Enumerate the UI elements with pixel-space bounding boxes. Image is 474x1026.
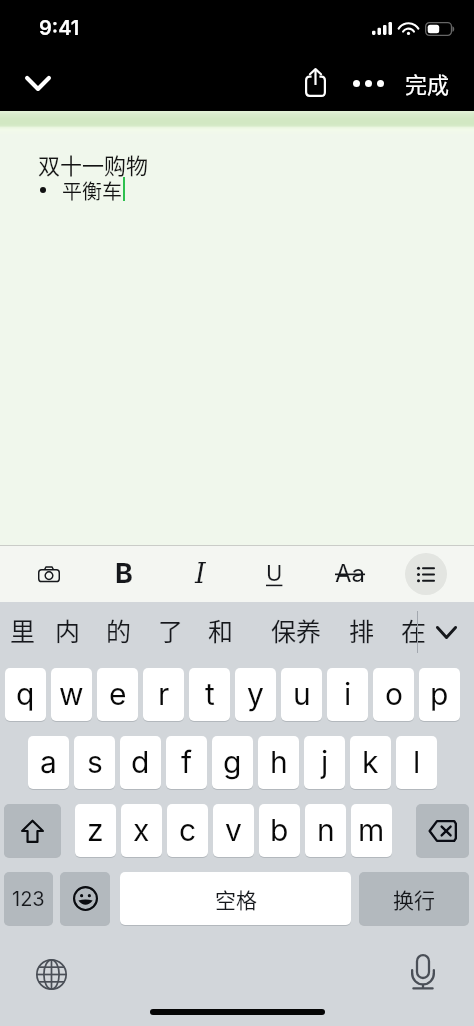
staticText: g: [223, 744, 242, 780]
staticText: p: [430, 676, 449, 712]
staticText: s: [87, 744, 103, 780]
staticText: Aa: [335, 559, 366, 588]
button[interactable]: Emoji: [60, 872, 110, 925]
button[interactable]: a: [28, 736, 69, 789]
button[interactable]: Text format: [326, 552, 374, 596]
button[interactable]: m: [351, 804, 392, 857]
button[interactable]: k: [350, 736, 391, 789]
button[interactable]: c: [167, 804, 208, 857]
button[interactable]: y: [235, 668, 276, 721]
button[interactable]: f: [166, 736, 207, 789]
button[interactable]: 的: [101, 608, 137, 652]
staticText: u: [293, 676, 311, 712]
staticText: j: [321, 744, 329, 780]
button[interactable]: Switch keyboard language: [27, 950, 75, 998]
button[interactable]: 里: [5, 608, 41, 652]
button[interactable]: Bold: [102, 552, 146, 596]
button[interactable]: p: [419, 668, 460, 721]
button[interactable]: 和: [203, 608, 239, 652]
button[interactable]: t: [189, 668, 230, 721]
button[interactable]: s: [74, 736, 115, 789]
staticText: c: [179, 812, 197, 848]
button[interactable]: 空格: [120, 872, 351, 925]
button[interactable]: Underline: [252, 552, 296, 596]
button[interactable]: e: [97, 668, 138, 721]
button[interactable]: Bulleted list: [405, 553, 447, 595]
staticText: h: [270, 744, 288, 780]
button[interactable]: 内: [50, 608, 86, 652]
button[interactable]: Backspace: [416, 804, 469, 857]
staticText: 里: [10, 612, 36, 648]
staticText: d: [131, 744, 150, 780]
button[interactable]: g: [212, 736, 253, 789]
staticText: 换行: [393, 884, 435, 914]
button[interactable]: w: [51, 668, 92, 721]
button[interactable]: Collapse note: [14, 59, 62, 107]
staticText: r: [158, 676, 170, 712]
button[interactable]: Share: [294, 57, 338, 109]
staticText: 在: [401, 612, 427, 648]
staticText: y: [247, 676, 264, 712]
staticText: 和: [208, 612, 234, 648]
button[interactable]: 了: [153, 608, 189, 652]
button[interactable]: Insert photo: [27, 552, 71, 596]
button[interactable]: Hide suggestions: [424, 608, 469, 656]
button[interactable]: Italic: [178, 552, 222, 596]
button[interactable]: n: [305, 804, 346, 857]
button[interactable]: j: [304, 736, 345, 789]
button[interactable]: 完成: [398, 57, 458, 109]
staticText: n: [317, 812, 335, 848]
staticText: o: [385, 676, 403, 712]
button[interactable]: More options: [344, 57, 402, 109]
button[interactable]: h: [258, 736, 299, 789]
staticText: 了: [158, 612, 184, 648]
button[interactable]: Shift: [4, 804, 61, 857]
staticText: i: [344, 676, 352, 712]
button[interactable]: r: [143, 668, 184, 721]
staticText: k: [362, 744, 379, 780]
staticText: 双十一购物: [38, 148, 149, 180]
button[interactable]: b: [259, 804, 300, 857]
staticText: e: [109, 676, 127, 712]
button[interactable]: v: [213, 804, 254, 857]
staticText: U: [266, 560, 283, 587]
staticText: l: [413, 744, 421, 780]
staticText: w: [59, 676, 84, 712]
button[interactable]: i: [327, 668, 368, 721]
button[interactable]: 123: [4, 872, 53, 925]
staticText: m: [358, 812, 385, 848]
staticText: 9:41: [39, 16, 80, 40]
button[interactable]: d: [120, 736, 161, 789]
staticText: f: [181, 744, 193, 780]
staticText: b: [270, 812, 289, 848]
staticText: x: [133, 812, 150, 848]
staticText: v: [225, 812, 242, 848]
staticText: t: [205, 676, 215, 712]
staticText: 的: [106, 612, 132, 648]
staticText: a: [40, 744, 57, 780]
button[interactable]: o: [373, 668, 414, 721]
staticText: 完成: [405, 67, 450, 99]
staticText: z: [87, 812, 104, 848]
staticText: 123: [12, 887, 45, 911]
staticText: 空格: [215, 884, 257, 914]
staticText: 排: [349, 612, 375, 648]
button[interactable]: 在: [396, 608, 432, 652]
button[interactable]: 保养: [266, 608, 327, 652]
button[interactable]: x: [121, 804, 162, 857]
staticText: 保养: [271, 612, 322, 648]
button[interactable]: Dictation: [399, 948, 447, 996]
button[interactable]: 排: [344, 608, 380, 652]
staticText: q: [16, 676, 35, 712]
button[interactable]: z: [75, 804, 116, 857]
staticText: 平衡车: [62, 176, 122, 205]
button[interactable]: u: [281, 668, 322, 721]
button[interactable]: l: [396, 736, 437, 789]
staticText: I: [195, 558, 206, 589]
button[interactable]: q: [5, 668, 46, 721]
staticText: B: [115, 557, 133, 590]
staticText: 内: [55, 612, 81, 648]
button[interactable]: 换行: [359, 872, 469, 925]
